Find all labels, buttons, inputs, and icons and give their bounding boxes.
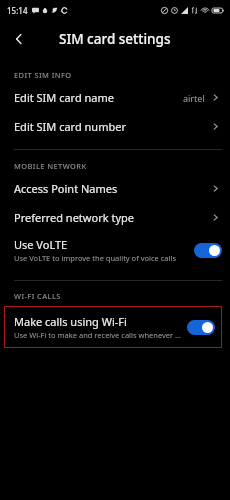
- staticText: EDIT SIM INFO: [14, 70, 72, 80]
- button[interactable]: Make calls using Wi-Fi: [4, 306, 222, 348]
- button[interactable]: Use VoLTE: [0, 232, 230, 268]
- button[interactable]: Toggle on: [187, 320, 215, 335]
- staticText: airtel: [183, 92, 205, 104]
- staticText: Access Point Names: [14, 181, 211, 196]
- staticText: WI-FI CALLS: [14, 291, 61, 301]
- staticText: SIM card settings: [59, 30, 171, 48]
- staticText: Use VoLTE: [14, 237, 68, 252]
- staticText: Edit SIM card name: [14, 90, 183, 105]
- button[interactable]: Preferred network type: [0, 203, 230, 232]
- button[interactable]: Back: [4, 24, 34, 54]
- staticText: Preferred network type: [14, 210, 211, 225]
- staticText: Make calls using Wi-Fi: [14, 314, 127, 329]
- staticText: Use VoLTE to improve the quality of voic…: [14, 253, 177, 263]
- button[interactable]: Edit SIM card number: [0, 112, 230, 141]
- staticText: MOBILE NETWORK: [14, 161, 87, 171]
- staticText: Edit SIM card number: [14, 119, 211, 134]
- button[interactable]: Access Point Names: [0, 174, 230, 203]
- staticText: Use Wi-Fi to make and receive calls when…: [14, 330, 183, 340]
- button[interactable]: Toggle on: [194, 243, 222, 258]
- staticText: 15:14: [7, 5, 28, 16]
- button[interactable]: Edit SIM card name: [0, 83, 230, 112]
